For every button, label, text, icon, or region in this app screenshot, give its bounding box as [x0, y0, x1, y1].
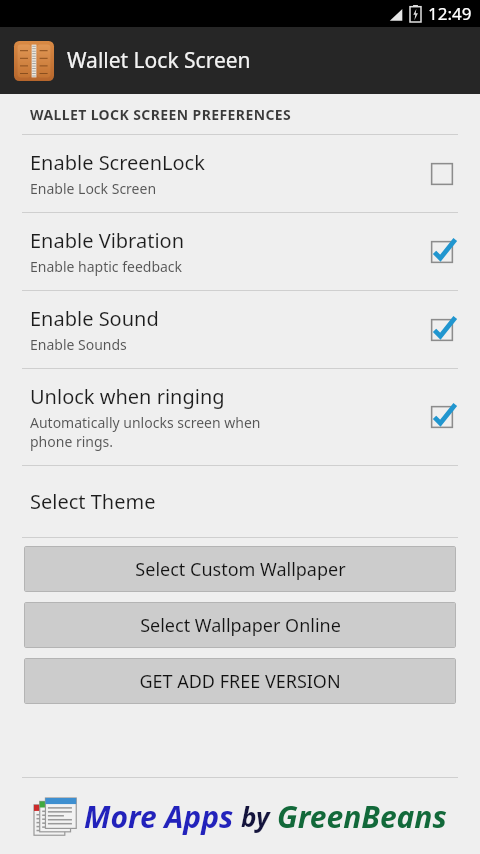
staticText: GET ADD FREE VERSION — [139, 669, 341, 694]
staticText: More Apps — [84, 796, 234, 837]
staticText: Enable Vibration — [30, 227, 185, 254]
button[interactable]: Enable ScreenLock — [0, 135, 480, 212]
button[interactable]: Select Wallpaper Online — [24, 602, 456, 648]
button[interactable]: GET ADD FREE VERSION — [24, 658, 456, 704]
staticText: 12:49 — [428, 2, 472, 25]
button[interactable]: Enable Sound — [0, 291, 480, 368]
staticText: Enable Sounds — [30, 335, 127, 354]
button[interactable]: Checked — [428, 316, 456, 344]
other: App icon — [14, 41, 54, 81]
button[interactable]: Select Custom Wallpaper — [24, 546, 456, 592]
staticText: Select Theme — [30, 488, 156, 515]
staticText: phone rings. — [30, 432, 114, 451]
staticText: Enable haptic feedback — [30, 257, 183, 276]
staticText: Wallet Lock Screen — [67, 46, 251, 75]
staticText: Unlock when ringing — [30, 383, 225, 410]
other: Signal strength 4G — [381, 6, 403, 22]
button[interactable]: Unchecked — [428, 160, 456, 188]
staticText: WALLET LOCK SCREEN PREFERENCES — [30, 105, 292, 124]
staticText: Automatically unlocks screen when — [30, 413, 261, 432]
button[interactable]: Unlock when ringing — [0, 369, 480, 465]
button[interactable]: Checked — [428, 238, 456, 266]
staticText: Select Custom Wallpaper — [135, 557, 346, 582]
button[interactable]: Checked — [428, 403, 456, 431]
staticText: by — [241, 799, 270, 834]
staticText: Select Wallpaper Online — [140, 613, 341, 638]
other: Battery — [410, 5, 421, 22]
staticText: Enable ScreenLock — [30, 149, 205, 176]
staticText: Enable Sound — [30, 305, 159, 332]
button[interactable]: Enable Vibration — [0, 213, 480, 290]
button[interactable]: Select Theme — [0, 466, 480, 537]
staticText: Enable Lock Screen — [30, 179, 157, 198]
staticText: GreenBeans — [277, 796, 447, 837]
button[interactable]: More Apps by GreenBeans — [0, 778, 480, 854]
